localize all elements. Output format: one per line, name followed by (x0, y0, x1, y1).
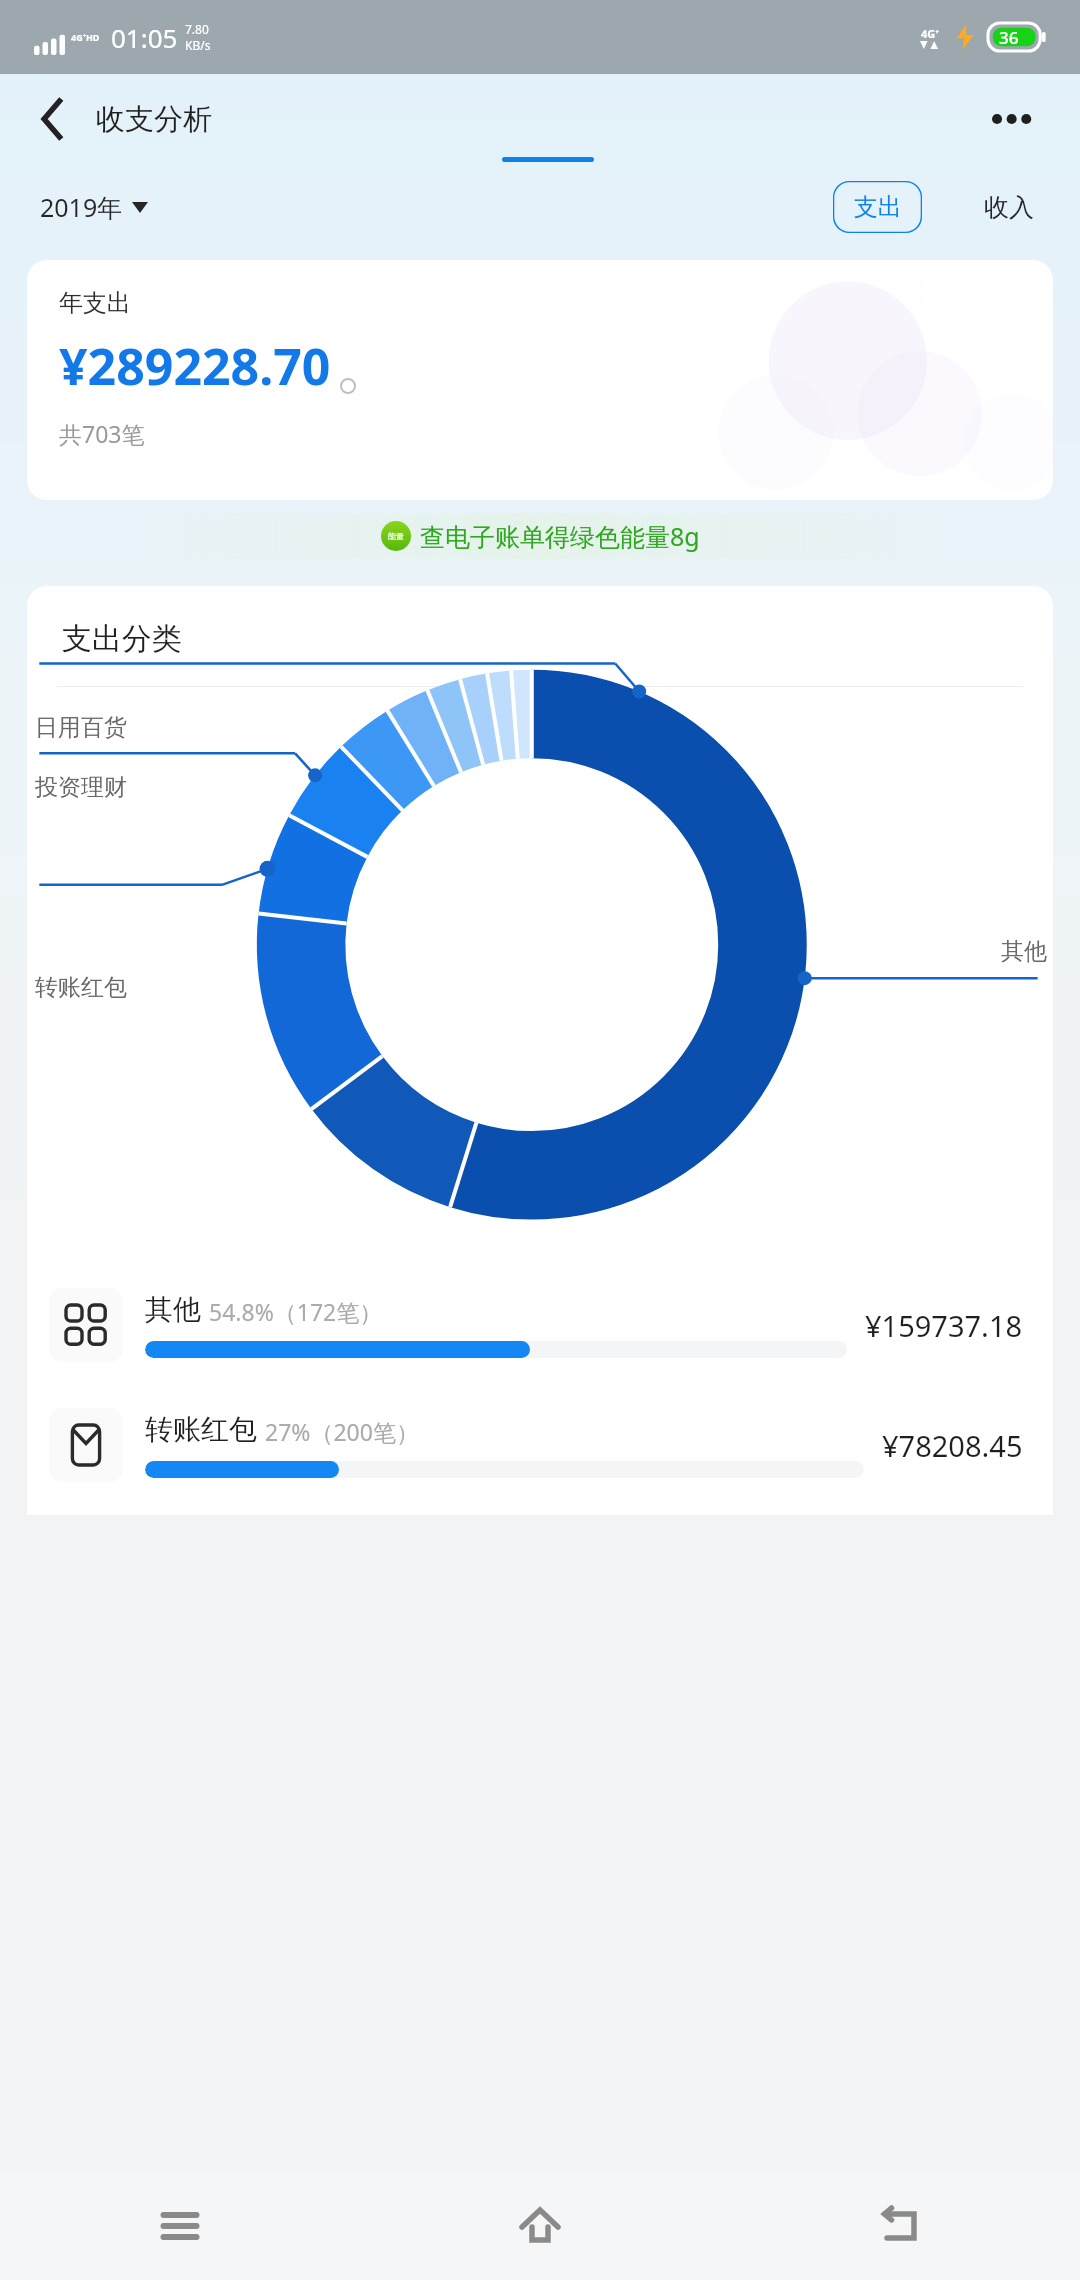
staticText: 7.80 (185, 21, 209, 37)
button[interactable]: 返回 (26, 91, 82, 147)
staticText: 支出 (854, 192, 902, 222)
staticText: ¥159737.18 (865, 1306, 1023, 1345)
button[interactable]: 菜单 (0, 2172, 360, 2280)
staticText: 年支出 (59, 288, 131, 318)
button[interactable]: 其他 (27, 1265, 1053, 1385)
button[interactable]: 年支出 (27, 260, 1053, 500)
staticText: 转账红包 (35, 973, 127, 1002)
staticText: 54.8%（172笔） (209, 1296, 383, 1327)
staticText: 能量 (388, 531, 404, 541)
button[interactable]: 支出 (833, 181, 922, 233)
staticText: 收支分析 (96, 101, 212, 138)
staticText: 4G⁺ (921, 26, 940, 41)
staticText: 转账红包 (145, 1412, 257, 1447)
button[interactable]: 收入 (978, 184, 1040, 231)
button[interactable]: 2019年 (40, 184, 148, 230)
button[interactable]: 返回 (720, 2172, 1080, 2280)
staticText: 4G⁺HD (71, 31, 100, 43)
staticText: 01:05 (111, 20, 178, 55)
staticText: 其他 (145, 1292, 201, 1327)
staticText: 36 (999, 26, 1019, 49)
staticText: ¥78208.45 (882, 1426, 1023, 1465)
staticText: 收入 (984, 192, 1034, 223)
other: 说明 (337, 378, 359, 394)
staticText: 查电子账单得绿色能量8g (420, 519, 700, 553)
staticText: 27%（200笔） (265, 1416, 419, 1447)
staticText: 共703笔 (59, 418, 145, 449)
button[interactable]: 更多 (984, 91, 1040, 147)
staticText: KB/s (185, 37, 211, 53)
button[interactable]: 转账红包 (27, 1385, 1053, 1505)
button[interactable]: 主页 (360, 2172, 720, 2280)
button[interactable]: 能量 (0, 500, 1080, 572)
staticText: 2019年 (40, 190, 123, 224)
staticText: 投资理财 (35, 773, 127, 802)
staticText: 支出分类 (62, 620, 182, 658)
staticText: ¥289228.70 (59, 332, 331, 400)
staticText: 日用百货 (35, 713, 127, 742)
staticText: 其他 (1001, 937, 1047, 966)
